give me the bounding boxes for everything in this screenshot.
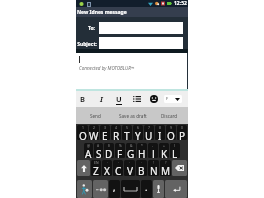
button[interactable]: Voice input <box>153 180 164 198</box>
staticText: · <box>107 160 108 165</box>
staticText: - <box>152 143 154 148</box>
staticText: * <box>141 143 143 148</box>
staticText: 8 <box>159 125 161 130</box>
button[interactable]: Font <box>164 95 182 103</box>
staticText: I <box>158 129 162 140</box>
staticText: E <box>102 129 108 140</box>
button[interactable]: Input method <box>77 180 92 198</box>
button[interactable]: Discard <box>151 107 188 124</box>
staticText: S <box>96 147 102 158</box>
button[interactable]: · <box>113 160 123 176</box>
staticText: EN <box>94 160 99 165</box>
staticText: · <box>141 160 142 165</box>
button[interactable]: Backspace <box>172 160 187 176</box>
staticText: 7 <box>148 125 150 130</box>
button[interactable]: · <box>124 160 135 176</box>
staticText: Subject: <box>76 41 97 48</box>
button[interactable]: Space <box>121 180 140 198</box>
staticText: Save as draft <box>119 113 147 119</box>
button[interactable]: Period <box>141 180 152 198</box>
staticText: 3 <box>104 125 106 130</box>
button[interactable]: $ <box>104 143 114 158</box>
button[interactable]: ( <box>170 143 180 158</box>
button[interactable]: · <box>102 160 112 176</box>
staticText: M <box>161 164 171 176</box>
button[interactable]: Symbols <box>93 180 108 198</box>
staticText: O <box>167 129 175 140</box>
staticText: , <box>113 181 116 193</box>
staticText: 9 <box>170 125 172 130</box>
button[interactable]: Emoticon <box>145 91 162 107</box>
button[interactable]: Comma <box>109 180 120 198</box>
staticText: I <box>100 94 103 104</box>
button[interactable]: 1 <box>77 125 88 140</box>
staticText: V <box>127 164 133 176</box>
button[interactable]: + <box>159 143 169 158</box>
staticText: 6 <box>137 125 139 130</box>
button[interactable]: 6 <box>133 125 143 140</box>
button[interactable]: · <box>136 160 147 176</box>
staticText: 4 <box>115 125 117 130</box>
staticText: 0 <box>181 125 183 130</box>
button[interactable]: - <box>148 143 158 158</box>
staticText: U <box>116 94 122 104</box>
button[interactable]: U <box>110 91 127 107</box>
staticText: K <box>161 147 168 158</box>
staticText: · <box>129 160 130 165</box>
button[interactable]: Shift <box>77 160 90 176</box>
staticText: 1 <box>82 125 84 130</box>
staticText: X <box>104 164 110 176</box>
staticText: & <box>130 143 133 148</box>
staticText: · <box>118 160 119 165</box>
staticText: Send <box>90 113 101 119</box>
staticText: U <box>145 129 153 140</box>
button[interactable]: 8 <box>155 125 165 140</box>
staticText: Connected by MOTOBLUR™ <box>79 65 135 71</box>
staticText: ! <box>153 160 154 165</box>
staticText: A <box>85 147 92 158</box>
staticText: F <box>117 147 123 158</box>
button[interactable]: 3 <box>100 125 110 140</box>
button[interactable]: I <box>93 91 110 107</box>
staticText: C <box>115 164 122 176</box>
staticText: P <box>179 129 186 140</box>
button[interactable]: & <box>126 143 136 158</box>
button[interactable]: 5 <box>122 125 132 140</box>
staticText: W <box>89 129 99 140</box>
button[interactable]: ? <box>160 160 171 176</box>
staticText: J <box>152 147 155 158</box>
button[interactable]: 7 <box>144 125 154 140</box>
button[interactable]: EN <box>91 160 101 176</box>
button[interactable]: % <box>115 143 125 158</box>
staticText: 2 <box>93 125 95 130</box>
button[interactable]: Save as draft <box>114 107 151 124</box>
staticText: 12:52 <box>174 0 187 7</box>
staticText: R <box>113 129 120 140</box>
staticText: L <box>172 147 178 158</box>
staticText: Discard <box>161 113 178 119</box>
button[interactable]: 9 <box>166 125 176 140</box>
staticText: . <box>145 181 148 193</box>
button[interactable]: # <box>94 143 103 158</box>
button[interactable]: @ <box>84 143 93 158</box>
button[interactable]: Bulleted list <box>128 91 145 107</box>
staticText: G <box>127 147 135 158</box>
staticText: ( <box>174 143 176 148</box>
button[interactable]: 0 <box>177 125 187 140</box>
button[interactable]: * <box>137 143 147 158</box>
button[interactable]: 4 <box>111 125 121 140</box>
button[interactable]: ! <box>148 160 159 176</box>
button[interactable]: Send <box>76 107 114 124</box>
staticText: B <box>80 94 85 104</box>
button[interactable]: Enter <box>165 180 187 198</box>
staticText: # <box>97 143 100 148</box>
staticText: % <box>119 143 122 148</box>
staticText: H <box>138 147 146 158</box>
button[interactable]: 2 <box>89 125 99 140</box>
staticText: Q <box>79 129 87 140</box>
button[interactable]: Connected by MOTOBLUR™ <box>76 53 188 89</box>
staticText: Z <box>93 164 99 176</box>
button[interactable]: B <box>76 91 88 107</box>
